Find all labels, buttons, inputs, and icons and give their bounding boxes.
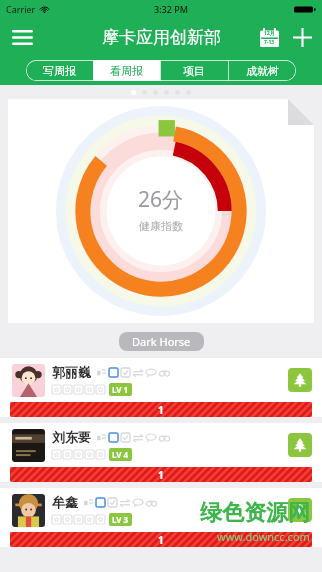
staticText: Dark Horse xyxy=(132,334,191,349)
button[interactable]: Add xyxy=(286,21,318,53)
button[interactable]: Dark Horse xyxy=(119,332,204,351)
staticText: 1 xyxy=(158,403,164,417)
button[interactable]: 1 xyxy=(10,532,312,547)
staticText: Carrier xyxy=(6,3,36,15)
button[interactable]: 成就树 xyxy=(228,60,296,81)
button[interactable]: 看周报 xyxy=(93,60,160,81)
staticText: 写周报 xyxy=(43,64,76,78)
button[interactable]: 牟鑫 xyxy=(0,488,322,532)
staticText: 1 xyxy=(158,533,164,547)
staticText: 摩卡应用创新部 xyxy=(102,27,221,48)
staticText: 项目 xyxy=(183,64,205,78)
staticText: 牟鑫 xyxy=(52,494,78,510)
button[interactable]: 1 xyxy=(10,402,312,417)
staticText: 成就树 xyxy=(246,64,279,78)
staticText: 1 xyxy=(158,468,164,482)
button[interactable]: 写周报 xyxy=(26,60,93,81)
staticText: 绿色资源网 xyxy=(200,499,310,527)
staticText: 7-13 xyxy=(264,39,275,46)
button[interactable]: Menu xyxy=(5,20,39,54)
staticText: 郭丽巍 xyxy=(52,364,91,380)
staticText: LV 1 xyxy=(112,384,129,395)
staticText: LV 4 xyxy=(112,449,129,460)
button[interactable]: 刘东要 xyxy=(0,423,322,467)
button[interactable]: Achievement tree xyxy=(288,498,312,522)
button[interactable]: 1 xyxy=(10,467,312,482)
button[interactable]: Achievement tree xyxy=(288,368,312,392)
staticText: www.downcc.com xyxy=(217,529,310,544)
button[interactable]: 郭丽巍 xyxy=(0,358,322,402)
staticText: 健康指数 xyxy=(139,219,183,233)
button[interactable]: 项目 xyxy=(160,60,228,81)
staticText: LV 3 xyxy=(112,514,129,525)
button[interactable]: Select week xyxy=(254,22,284,52)
staticText: 看周报 xyxy=(110,64,143,78)
staticText: 26分 xyxy=(138,185,184,214)
button[interactable]: Achievement tree xyxy=(288,433,312,457)
staticText: 刘东要 xyxy=(52,429,91,445)
staticText: 3:32 PM xyxy=(154,3,188,15)
staticText: 12月 xyxy=(264,30,275,37)
